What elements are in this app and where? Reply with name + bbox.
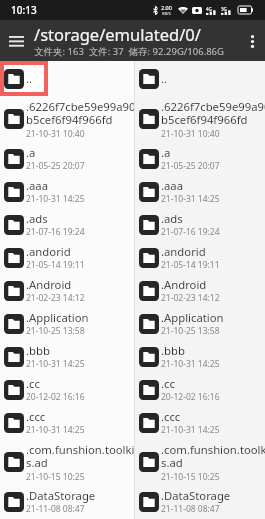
button[interactable]: .a [135, 142, 265, 175]
staticText: 21-10-31 14:25 [26, 358, 85, 370]
staticText: .andorid [26, 244, 71, 259]
staticText: .a [26, 145, 36, 160]
staticText: 20-12-02 16:16 [161, 391, 220, 403]
staticText: 21-10-15 10:25 [161, 471, 220, 483]
button[interactable]: .ads [0, 208, 134, 241]
button[interactable]: .bbb [0, 340, 134, 373]
button[interactable]: .com.funshion.toolkit s.ad [0, 439, 134, 485]
staticText: 21-10-31 14:25 [161, 358, 220, 370]
button[interactable]: .ccc [135, 406, 265, 439]
button[interactable]: .Application [135, 307, 265, 340]
staticText: .a [161, 145, 171, 160]
button[interactable]: More options [239, 28, 265, 54]
staticText: .Android [161, 277, 207, 292]
staticText: .Android [26, 277, 72, 292]
staticText: 21-05-25 20:07 [26, 160, 85, 172]
staticText: .ccc [26, 409, 46, 424]
staticText: 21-10-31 10:40 [26, 128, 85, 140]
button[interactable]: .DataStorage [135, 485, 265, 518]
button[interactable]: .Android [0, 274, 134, 307]
button[interactable]: .Application [0, 307, 134, 340]
button[interactable]: .aaa [135, 175, 265, 208]
staticText: KB/S [162, 11, 171, 16]
staticText: .Application [26, 310, 89, 325]
button[interactable]: .andorid [0, 241, 134, 274]
staticText: .cc [26, 376, 40, 391]
staticText: 21-07-16 19:24 [26, 226, 85, 238]
staticText: 21-10-31 14:25 [161, 193, 220, 205]
staticText: .DataStorage [26, 488, 96, 503]
button[interactable]: .6226f7cbe59e99a90 b5cef6f94f966fd [135, 96, 265, 142]
staticText: 21-10-31 10:40 [161, 128, 220, 140]
staticText: 21-02-23 14:12 [26, 292, 85, 304]
staticText: .Application [161, 310, 224, 325]
staticText: 21-11-08 08:47 [26, 503, 85, 515]
button[interactable]: .6226f7cbe59e99a90 b5cef6f94f966fd [0, 96, 134, 142]
staticText: /storage/emulated/0/ [34, 23, 201, 45]
button[interactable]: .DataStorage [0, 485, 134, 518]
button[interactable]: .Android [135, 274, 265, 307]
staticText: 21-05-14 19:11 [161, 259, 220, 271]
staticText: .. [161, 71, 168, 86]
staticText: 21-10-25 13:58 [161, 325, 220, 337]
staticText: .com.funshion.toolkit s.ad [161, 442, 265, 471]
staticText: .6226f7cbe59e99a90 b5cef6f94f966fd [161, 99, 265, 128]
button[interactable]: .aaa [0, 175, 134, 208]
staticText: .DataStorage [161, 488, 231, 503]
staticText: .. [26, 71, 33, 86]
staticText: 21-10-15 10:25 [26, 471, 85, 483]
button[interactable]: .a [0, 142, 134, 175]
staticText: .aaa [26, 178, 49, 193]
button[interactable]: .cc [0, 373, 134, 406]
staticText: 21-07-16 19:24 [161, 226, 220, 238]
staticText: 3G [221, 6, 227, 12]
button[interactable]: .ccc [0, 406, 134, 439]
staticText: 21-10-31 14:25 [161, 424, 220, 436]
staticText: 20-12-02 16:16 [26, 391, 85, 403]
button[interactable]: .com.funshion.toolkit s.ad [135, 439, 265, 485]
staticText: 文件夹: 163 文件: 37 储存: 92.29G/106.86G [34, 45, 224, 58]
staticText: 21-05-25 20:07 [161, 160, 220, 172]
staticText: .andorid [161, 244, 206, 259]
staticText: 21-02-23 14:12 [161, 292, 220, 304]
staticText: .com.funshion.toolkit s.ad [26, 442, 134, 471]
button[interactable]: .. [135, 61, 265, 96]
staticText: .6226f7cbe59e99a90 b5cef6f94f966fd [26, 99, 134, 128]
staticText: 4G [206, 6, 212, 12]
button[interactable]: .andorid [135, 241, 265, 274]
staticText: .bbb [26, 343, 50, 358]
staticText: .aaa [161, 178, 184, 193]
staticText: 21-10-25 13:58 [26, 325, 85, 337]
button[interactable]: .cc [135, 373, 265, 406]
button[interactable]: .bbb [135, 340, 265, 373]
staticText: .ccc [161, 409, 181, 424]
staticText: 21-11-08 08:47 [161, 503, 220, 515]
staticText: 2.00 [161, 4, 172, 11]
button[interactable]: .ads [135, 208, 265, 241]
staticText: 21-05-14 19:11 [26, 259, 85, 271]
staticText: .ads [161, 211, 183, 226]
button[interactable]: .. [0, 61, 134, 96]
staticText: .bbb [161, 343, 185, 358]
staticText: 10:13 [11, 3, 37, 17]
staticText: .cc [161, 376, 175, 391]
staticText: 21-10-31 14:25 [26, 193, 85, 205]
staticText: 21-10-31 14:25 [26, 424, 85, 436]
staticText: .ads [26, 211, 48, 226]
button[interactable]: Menu [0, 25, 32, 57]
